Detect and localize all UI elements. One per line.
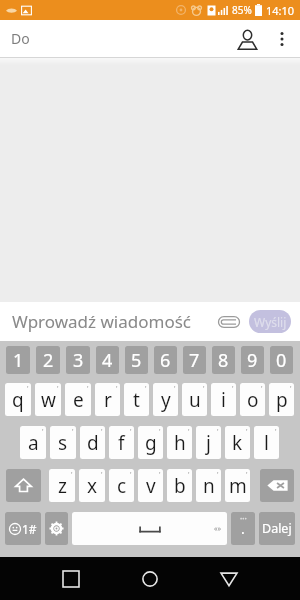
button[interactable]: Backspace: [260, 469, 294, 502]
staticText: ': [290, 384, 292, 394]
button[interactable]: Wyślij: [249, 310, 291, 333]
button[interactable]: n: [196, 469, 221, 502]
staticText: e: [73, 387, 84, 413]
button[interactable]: w: [35, 383, 61, 416]
staticText: ': [145, 384, 147, 394]
button[interactable]: More options: [268, 25, 296, 53]
button[interactable]: 3: [66, 346, 90, 374]
staticText: ': [71, 470, 73, 480]
staticText: w: [41, 387, 56, 413]
staticText: i: [221, 387, 226, 413]
staticText: ': [101, 427, 103, 437]
staticText: b: [174, 473, 186, 499]
staticText: ': [188, 427, 190, 437]
button[interactable]: Keyboard settings: [45, 512, 68, 545]
staticText: ': [72, 427, 74, 437]
button[interactable]: l: [254, 426, 279, 459]
button[interactable]: 2: [36, 346, 60, 374]
button[interactable]: Symbols: [5, 512, 41, 545]
button[interactable]: q: [5, 383, 31, 416]
button[interactable]: 6: [154, 346, 177, 374]
button[interactable]: 9: [241, 346, 264, 374]
button[interactable]: i: [211, 383, 236, 416]
staticText: o: [247, 387, 259, 413]
button[interactable]: g: [138, 426, 163, 459]
button[interactable]: b: [167, 469, 192, 502]
staticText: f: [118, 430, 125, 456]
button[interactable]: k: [225, 426, 250, 459]
button[interactable]: Home: [128, 557, 171, 600]
button[interactable]: 7: [183, 346, 206, 374]
staticText: ': [246, 427, 248, 437]
button[interactable]: v: [138, 469, 163, 502]
staticText: 9: [247, 348, 258, 373]
button[interactable]: c: [109, 469, 134, 502]
staticText: g: [145, 430, 157, 456]
button[interactable]: m: [225, 469, 250, 502]
staticText: ': [116, 384, 118, 394]
button[interactable]: s: [50, 426, 76, 459]
staticText: 5: [131, 348, 142, 373]
button[interactable]: Contacts: [230, 22, 264, 56]
staticText: .: [241, 519, 245, 538]
button[interactable]: p: [269, 383, 294, 416]
staticText: Dalej: [262, 520, 292, 537]
button[interactable]: o: [240, 383, 265, 416]
staticText: 85%: [232, 3, 252, 17]
button[interactable]: u: [182, 383, 207, 416]
button[interactable]: Space: [72, 512, 227, 545]
staticText: ': [203, 384, 205, 394]
button[interactable]: 0: [270, 346, 293, 374]
staticText: 1#: [22, 521, 37, 537]
staticText: 4: [102, 348, 113, 373]
button[interactable]: Shift: [6, 469, 41, 502]
button[interactable]: j: [196, 426, 221, 459]
staticText: ': [275, 427, 277, 437]
staticText: c: [117, 473, 127, 499]
button[interactable]: t: [124, 383, 149, 416]
button[interactable]: Dalej: [259, 512, 295, 545]
button[interactable]: x: [79, 469, 105, 502]
staticText: ': [159, 470, 161, 480]
button[interactable]: Back: [207, 557, 250, 600]
button[interactable]: a: [20, 426, 46, 459]
button[interactable]: h: [167, 426, 192, 459]
button[interactable]: e: [65, 383, 91, 416]
staticText: ': [261, 384, 263, 394]
staticText: s: [58, 430, 68, 456]
button[interactable]: 1: [6, 346, 30, 374]
button[interactable]: 8: [212, 346, 235, 374]
staticText: ': [101, 470, 103, 480]
staticText: 14:10: [266, 3, 295, 18]
staticText: k: [232, 430, 243, 456]
button[interactable]: .: [231, 512, 255, 545]
button[interactable]: 4: [96, 346, 119, 374]
staticText: 6: [160, 348, 171, 373]
staticText: ': [27, 384, 29, 394]
staticText: ': [246, 470, 248, 480]
button[interactable]: r: [95, 383, 120, 416]
staticText: ': [130, 427, 132, 437]
staticText: •••: [240, 515, 247, 523]
staticText: y: [161, 387, 171, 413]
button[interactable]: 5: [125, 346, 148, 374]
staticText: Wyślij: [254, 314, 287, 330]
button[interactable]: d: [80, 426, 105, 459]
button[interactable]: z: [49, 469, 75, 502]
button[interactable]: Recent apps: [49, 557, 92, 600]
button[interactable]: Attach file: [215, 307, 243, 337]
staticText: «»: [214, 524, 222, 534]
staticText: ': [217, 470, 219, 480]
staticText: j: [206, 430, 211, 456]
staticText: 0: [276, 348, 287, 373]
staticText: ': [174, 384, 176, 394]
staticText: q: [12, 387, 24, 413]
staticText: a: [28, 430, 39, 456]
staticText: ': [159, 427, 161, 437]
button[interactable]: f: [109, 426, 134, 459]
staticText: ': [57, 384, 59, 394]
staticText: ': [232, 384, 234, 394]
staticText: m: [229, 473, 247, 499]
button[interactable]: y: [153, 383, 178, 416]
staticText: Wprowadź wiadomość: [12, 310, 191, 333]
